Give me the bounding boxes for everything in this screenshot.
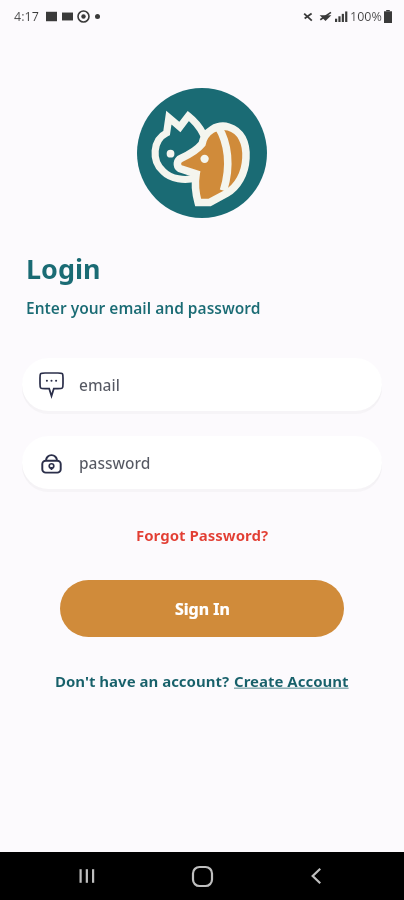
button[interactable]: Don't have an account?: [49, 667, 355, 695]
button[interactable]: email: [22, 358, 382, 411]
staticText: Login: [26, 250, 101, 287]
staticText: Enter your email and password: [26, 297, 261, 318]
staticText: password: [79, 452, 151, 473]
staticText: Forgot Password?: [136, 525, 269, 545]
staticText: Sign In: [175, 598, 230, 620]
staticText: Create Account: [234, 671, 349, 691]
button[interactable]: Recents: [59, 852, 115, 900]
button[interactable]: Home: [174, 852, 230, 900]
staticText: 100%: [350, 8, 382, 25]
staticText: 4:17: [14, 8, 39, 25]
staticText: email: [79, 374, 120, 395]
button[interactable]: Forgot Password?: [128, 521, 277, 549]
button[interactable]: Back: [289, 852, 345, 900]
button[interactable]: password: [22, 436, 382, 489]
staticText: Don't have an account?: [55, 671, 234, 691]
button[interactable]: Sign In: [60, 580, 344, 637]
